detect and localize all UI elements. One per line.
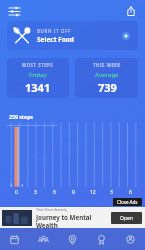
staticText: 12 <box>90 189 96 196</box>
button[interactable]: Awards <box>87 228 116 250</box>
staticText: Friday <box>29 71 47 79</box>
button[interactable]: Open <box>111 212 142 224</box>
button[interactable]: Explore <box>58 228 87 250</box>
button[interactable]: Settings <box>6 3 22 19</box>
staticText: MOST STEPS <box>22 62 54 68</box>
button[interactable]: MOST STEPS <box>7 58 69 98</box>
staticText: 9 <box>72 189 75 196</box>
staticText: Select Food <box>37 35 74 44</box>
button[interactable]: Profile <box>116 228 145 250</box>
staticText: Journey to Mental Wealth <box>36 213 108 228</box>
staticText: THIS WEEK <box>93 62 121 68</box>
button[interactable]: Calendar <box>0 228 29 250</box>
staticText: 0 <box>15 189 18 196</box>
staticText: 1341 <box>25 80 51 95</box>
staticText: 259 steps <box>9 113 34 120</box>
staticText: Open <box>120 215 133 222</box>
button[interactable]: Add food <box>119 29 133 43</box>
staticText: BURN IT OFF <box>37 28 71 34</box>
button[interactable]: THIS WEEK <box>75 58 138 98</box>
staticText: Close Ads <box>117 199 138 205</box>
staticText: 3 <box>110 189 113 196</box>
staticText: 6 <box>129 189 132 196</box>
staticText: Average <box>95 71 119 79</box>
button[interactable]: That Oasis Anxiety <box>0 207 145 228</box>
button[interactable]: Close Ads <box>113 198 142 206</box>
staticText: 6 <box>53 189 56 196</box>
button[interactable]: Friends <box>29 228 58 250</box>
staticText: 3 <box>34 189 37 196</box>
button[interactable]: Share <box>123 3 139 19</box>
button[interactable]: BURN IT OFF <box>7 21 138 50</box>
staticText: 739 <box>98 80 117 95</box>
staticText: That Oasis Anxiety <box>36 207 68 212</box>
